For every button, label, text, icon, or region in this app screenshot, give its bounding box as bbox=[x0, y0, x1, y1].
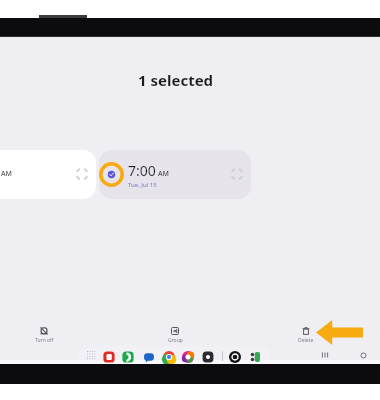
button[interactable]: Group bbox=[163, 327, 187, 344]
staticText: 7:00 bbox=[128, 161, 156, 180]
staticText: Delete bbox=[298, 337, 314, 344]
button[interactable]: All apps bbox=[87, 351, 95, 359]
button[interactable]: App bbox=[103, 351, 115, 363]
button[interactable]: 6:30 bbox=[0, 150, 96, 199]
staticText: AM bbox=[1, 169, 13, 179]
button[interactable]: Toggle alarm bbox=[75, 167, 89, 181]
staticText: Turn off bbox=[35, 337, 54, 344]
button[interactable]: App bbox=[163, 351, 175, 363]
button[interactable]: Recent apps bbox=[321, 351, 331, 359]
button[interactable]: App bbox=[182, 351, 194, 363]
button[interactable]: Turn off bbox=[32, 327, 56, 344]
button[interactable]: Home bbox=[359, 351, 368, 360]
button[interactable]: App bbox=[143, 351, 155, 363]
button[interactable]: Toggle alarm bbox=[230, 167, 244, 181]
staticText: AM bbox=[158, 169, 170, 179]
staticText: Tue, Jul 15 bbox=[128, 181, 157, 189]
button[interactable]: App bbox=[249, 351, 261, 363]
button[interactable]: Selected bbox=[99, 150, 251, 199]
other: Selected bbox=[99, 162, 124, 187]
button[interactable]: Delete bbox=[294, 327, 318, 344]
button[interactable]: App bbox=[202, 351, 214, 363]
staticText: 1 selected bbox=[138, 70, 214, 90]
button[interactable]: App bbox=[122, 351, 134, 363]
button[interactable]: App bbox=[229, 351, 241, 363]
staticText: Group bbox=[168, 337, 183, 344]
